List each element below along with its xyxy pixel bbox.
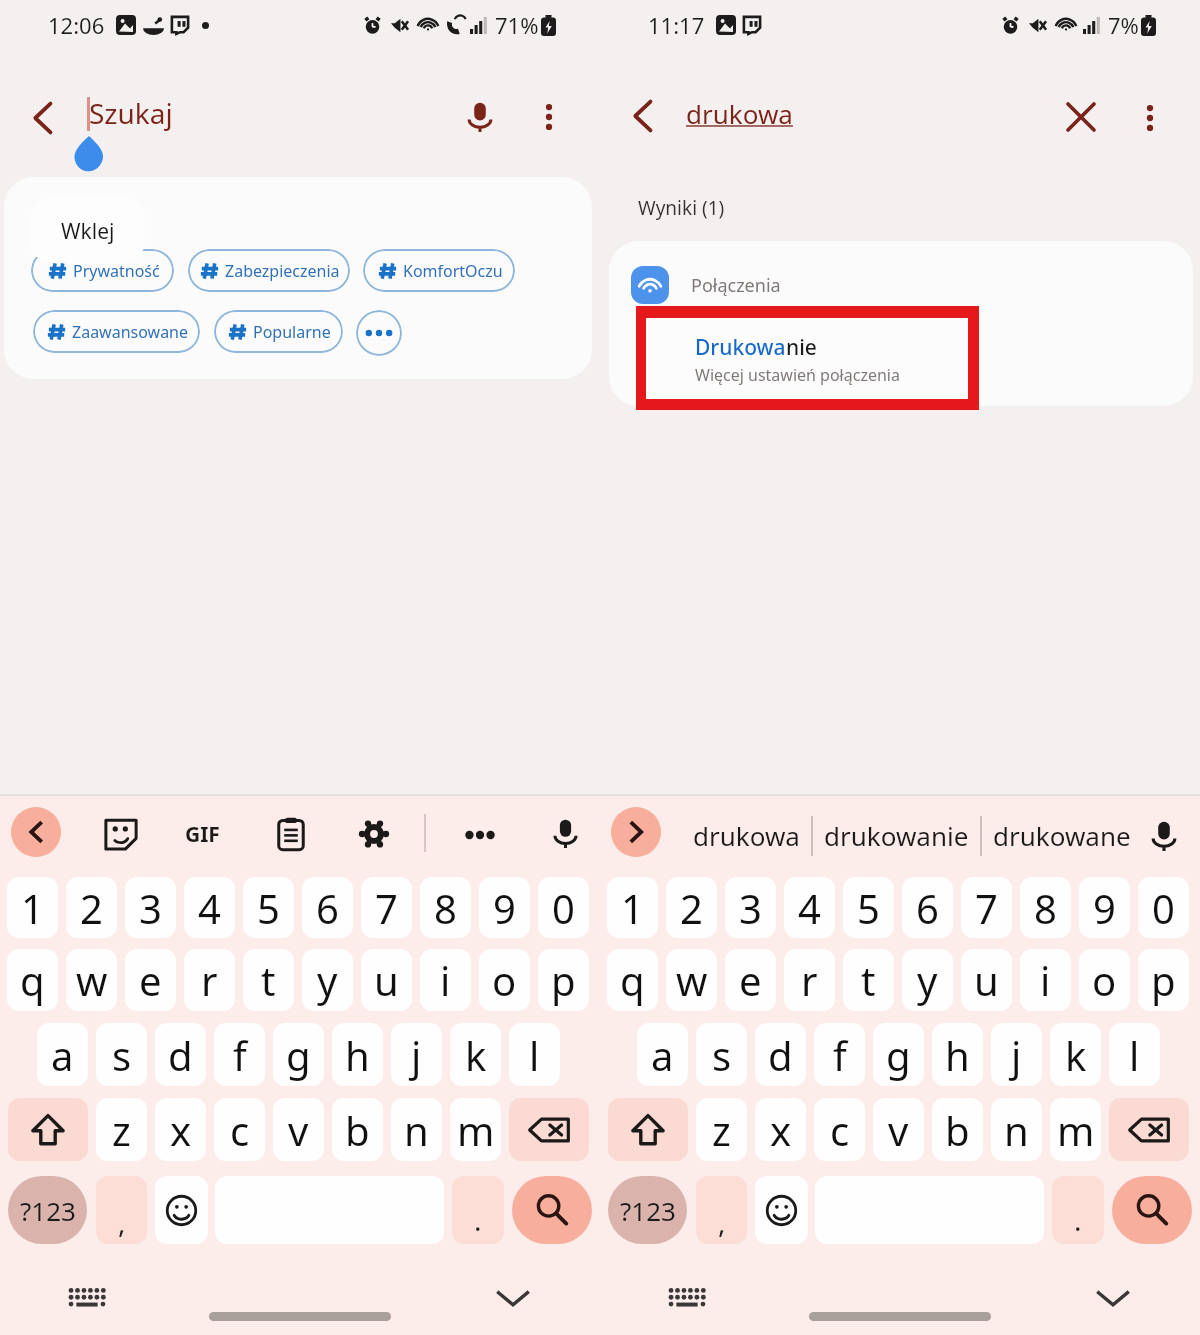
- button[interactable]: n: [391, 1098, 442, 1161]
- button[interactable]: z: [696, 1098, 747, 1161]
- button[interactable]: y: [902, 949, 953, 1011]
- button[interactable]: Toolbar item: [95, 808, 147, 860]
- button[interactable]: Backspace: [509, 1098, 589, 1161]
- button[interactable]: j: [391, 1023, 442, 1086]
- button[interactable]: n: [991, 1098, 1042, 1161]
- button[interactable]: 9: [1079, 877, 1130, 938]
- button[interactable]: b: [932, 1098, 983, 1161]
- button[interactable]: p: [538, 949, 589, 1011]
- button[interactable]: 9: [479, 877, 530, 938]
- button[interactable]: m: [1050, 1098, 1101, 1161]
- button[interactable]: o: [479, 949, 530, 1011]
- button[interactable]: j: [991, 1023, 1042, 1086]
- button[interactable]: c: [814, 1098, 865, 1161]
- button[interactable]: l: [1109, 1023, 1160, 1086]
- button[interactable]: k: [1050, 1023, 1101, 1086]
- button[interactable]: Zaawansowane: [33, 310, 200, 353]
- button[interactable]: Backspace: [1109, 1098, 1189, 1161]
- button[interactable]: Toolbar item: [265, 808, 317, 860]
- button[interactable]: f: [814, 1023, 865, 1086]
- button[interactable]: 0: [538, 877, 589, 938]
- button[interactable]: r: [784, 949, 835, 1011]
- button[interactable]: ,: [696, 1176, 747, 1244]
- button[interactable]: ?123: [608, 1176, 687, 1244]
- button[interactable]: More tags: [356, 310, 402, 356]
- button[interactable]: Search: [512, 1176, 592, 1244]
- button[interactable]: ,: [96, 1176, 147, 1244]
- button[interactable]: g: [273, 1023, 324, 1086]
- button[interactable]: d: [155, 1023, 206, 1086]
- button[interactable]: t: [843, 949, 894, 1011]
- button[interactable]: Toolbar item: [348, 808, 400, 860]
- button[interactable]: 1: [607, 877, 658, 938]
- button[interactable]: Search: [1112, 1176, 1192, 1244]
- button[interactable]: Back: [18, 89, 66, 137]
- button[interactable]: b: [332, 1098, 383, 1161]
- button[interactable]: ?123: [8, 1176, 87, 1244]
- button[interactable]: m: [450, 1098, 501, 1161]
- button[interactable]: Popularne: [214, 310, 343, 353]
- button[interactable]: Prywatność: [31, 249, 174, 292]
- button[interactable]: GIF: [180, 812, 224, 856]
- button[interactable]: drukowane: [982, 818, 1142, 853]
- button[interactable]: Expand toolbar: [611, 807, 661, 857]
- button[interactable]: z: [96, 1098, 147, 1161]
- button[interactable]: 1: [7, 877, 58, 938]
- button[interactable]: Keyboard layout: [61, 1272, 113, 1324]
- button[interactable]: 2: [66, 877, 117, 938]
- button[interactable]: 0: [1138, 877, 1189, 938]
- button[interactable]: s: [96, 1023, 147, 1086]
- button[interactable]: x: [755, 1098, 806, 1161]
- button[interactable]: u: [361, 949, 412, 1011]
- button[interactable]: l: [509, 1023, 560, 1086]
- button[interactable]: 3: [725, 877, 776, 938]
- button[interactable]: Hide keyboard: [487, 1272, 539, 1324]
- button[interactable]: t: [243, 949, 294, 1011]
- button[interactable]: Back: [618, 89, 666, 137]
- button[interactable]: v: [873, 1098, 924, 1161]
- button[interactable]: 3: [125, 877, 176, 938]
- button[interactable]: y: [302, 949, 353, 1011]
- button[interactable]: More: [454, 809, 506, 861]
- button[interactable]: a: [637, 1023, 688, 1086]
- button[interactable]: 5: [243, 877, 294, 938]
- button[interactable]: Hide keyboard: [1087, 1272, 1139, 1324]
- button[interactable]: Clear: [1055, 87, 1107, 139]
- button[interactable]: 6: [302, 877, 353, 938]
- button[interactable]: Voice input: [1138, 810, 1190, 862]
- button[interactable]: s: [696, 1023, 747, 1086]
- button[interactable]: 7: [361, 877, 412, 938]
- button[interactable]: w: [666, 949, 717, 1011]
- button[interactable]: e: [125, 949, 176, 1011]
- button[interactable]: .: [452, 1176, 504, 1244]
- button[interactable]: o: [1079, 949, 1130, 1011]
- button[interactable]: Zabezpieczenia: [188, 249, 350, 292]
- button[interactable]: More options: [525, 89, 573, 137]
- button[interactable]: h: [332, 1023, 383, 1086]
- button[interactable]: r: [184, 949, 235, 1011]
- button[interactable]: w: [66, 949, 117, 1011]
- button[interactable]: k: [450, 1023, 501, 1086]
- button[interactable]: i: [1020, 949, 1071, 1011]
- button[interactable]: Emoji: [755, 1176, 808, 1244]
- button[interactable]: g: [873, 1023, 924, 1086]
- button[interactable]: Shift: [608, 1098, 688, 1161]
- button[interactable]: 4: [184, 877, 235, 938]
- button[interactable]: 5: [843, 877, 894, 938]
- button[interactable]: drukowanie: [813, 818, 980, 853]
- button[interactable]: q: [607, 949, 658, 1011]
- button[interactable]: c: [214, 1098, 265, 1161]
- button[interactable]: d: [755, 1023, 806, 1086]
- button[interactable]: h: [932, 1023, 983, 1086]
- button[interactable]: x: [155, 1098, 206, 1161]
- button[interactable]: Voice search: [453, 86, 507, 140]
- button[interactable]: Voice input: [539, 807, 591, 859]
- button[interactable]: Keyboard layout: [661, 1272, 713, 1324]
- button[interactable]: i: [420, 949, 471, 1011]
- button[interactable]: Wklej: [30, 198, 145, 263]
- button[interactable]: 6: [902, 877, 953, 938]
- button[interactable]: Shift: [8, 1098, 88, 1161]
- button[interactable]: 7: [961, 877, 1012, 938]
